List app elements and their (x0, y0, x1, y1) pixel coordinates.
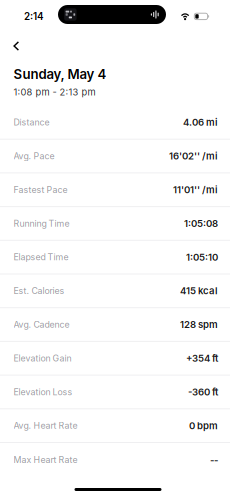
staticText: 0 bpm (189, 420, 218, 431)
staticText: 1:08 pm - 2:13 pm (14, 87, 96, 98)
staticText: 128 spm (180, 319, 218, 330)
staticText: Avg. Cadence (13, 319, 69, 330)
staticText: +354 ft (186, 352, 218, 364)
staticText: Distance (13, 117, 49, 128)
staticText: Max Heart Rate (13, 454, 77, 465)
staticText: Elapsed Time (13, 252, 68, 262)
staticText: Est. Calories (13, 285, 64, 296)
staticText: -360 ft (188, 386, 218, 398)
staticText: Elevation Gain (13, 353, 71, 363)
staticText: 1:05:08 (184, 218, 218, 229)
staticText: 415 kcal (180, 285, 218, 297)
staticText: Elevation Loss (13, 387, 72, 397)
staticText: 4.06 mi (183, 116, 218, 128)
button[interactable]: Back (0, 35, 31, 57)
staticText: 16'02'' /mi (169, 150, 218, 162)
staticText: 11'01'' /mi (173, 184, 218, 195)
staticText: 2:14 (24, 10, 44, 22)
staticText: -- (210, 454, 218, 466)
staticText: 1:05:10 (186, 251, 218, 263)
staticText: Running Time (13, 218, 69, 229)
staticText: Avg. Heart Rate (13, 420, 77, 431)
staticText: Fastest Pace (13, 184, 67, 195)
staticText: Sunday, May 4 (14, 66, 107, 82)
staticText: Avg. Pace (13, 151, 54, 161)
